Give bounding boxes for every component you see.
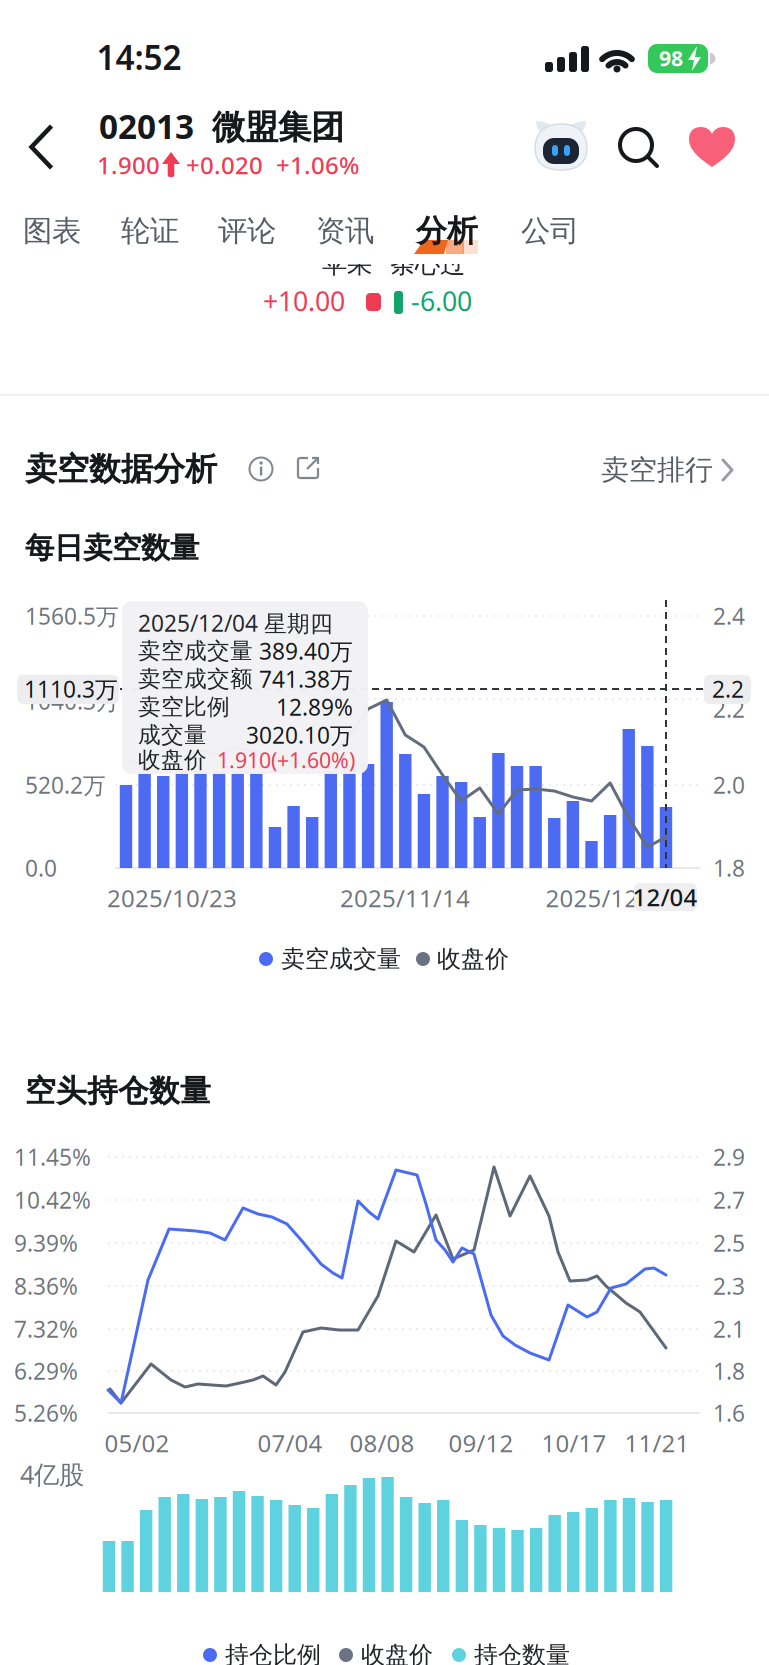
staticText: 2.2 bbox=[712, 674, 744, 704]
staticText: 收盘价 bbox=[138, 746, 207, 774]
staticText: 12/04 bbox=[632, 881, 697, 913]
staticText: 卖空成交量 bbox=[281, 944, 401, 974]
staticText: 收盘价 bbox=[361, 1640, 433, 1665]
button[interactable]: 资讯 bbox=[316, 213, 374, 249]
staticText: 轮证 bbox=[121, 213, 179, 249]
button[interactable]: 公司 bbox=[521, 213, 579, 249]
staticText: 1560.5万 bbox=[25, 601, 119, 631]
staticText: -6.00 bbox=[411, 283, 472, 319]
staticText: 98 bbox=[659, 44, 683, 72]
staticText: 2025/12 bbox=[545, 882, 638, 914]
staticText: 0.0 bbox=[25, 853, 57, 883]
staticText: +1.06% bbox=[276, 149, 359, 181]
staticText: 1.900 bbox=[97, 149, 160, 181]
staticText: 公司 bbox=[521, 213, 579, 249]
staticText: 空头持仓数量 bbox=[25, 1072, 211, 1110]
staticText: 2.9 bbox=[713, 1142, 745, 1172]
staticText: 2.2 bbox=[713, 694, 745, 724]
staticText: 07/04 bbox=[257, 1427, 322, 1459]
staticText: 条心过 bbox=[390, 248, 465, 279]
staticText: 1.8 bbox=[713, 853, 745, 883]
button[interactable]: AI assistant bbox=[534, 120, 588, 172]
staticText: 6.29% bbox=[14, 1356, 78, 1386]
staticText: 2.7 bbox=[713, 1185, 745, 1215]
staticText: 3020.10万 bbox=[246, 720, 353, 750]
staticText: 7.32% bbox=[14, 1314, 78, 1344]
staticText: 4亿股 bbox=[20, 1457, 84, 1491]
staticText: 1.6 bbox=[713, 1398, 745, 1428]
staticText: 卖空成交量 bbox=[138, 637, 253, 665]
staticText: 持仓比例 bbox=[225, 1640, 321, 1665]
staticText: 图表 bbox=[23, 213, 81, 249]
staticText: 05/02 bbox=[104, 1427, 169, 1459]
staticText: 成交量 bbox=[138, 721, 207, 749]
staticText: 2.5 bbox=[713, 1228, 745, 1258]
button[interactable]: Share bbox=[295, 455, 321, 481]
staticText: +0.020 bbox=[186, 149, 263, 181]
staticText: +10.00 bbox=[263, 283, 345, 319]
staticText: 9.39% bbox=[14, 1228, 78, 1258]
staticText: 2.4 bbox=[713, 601, 745, 631]
staticText: 2025/11/14 bbox=[340, 882, 470, 914]
button[interactable]: 轮证 bbox=[121, 213, 179, 249]
staticText: 5.26% bbox=[14, 1398, 78, 1428]
button[interactable]: Info bbox=[248, 456, 274, 482]
staticText: 1110.3万 bbox=[24, 674, 118, 704]
staticText: 资讯 bbox=[316, 213, 374, 249]
staticText: 2.3 bbox=[713, 1271, 745, 1301]
button[interactable]: Search bbox=[616, 125, 662, 171]
staticText: 1.8 bbox=[713, 1356, 745, 1386]
staticText: 卖空比例 bbox=[138, 693, 230, 721]
button[interactable]: 分析 bbox=[416, 212, 478, 250]
staticText: 2.1 bbox=[713, 1314, 745, 1344]
button[interactable]: 评论 bbox=[218, 213, 276, 249]
staticText: 2025/12/04 星期四 bbox=[138, 608, 333, 638]
button[interactable]: 卖空排行 bbox=[601, 453, 733, 487]
staticText: 2025/10/23 bbox=[107, 882, 237, 914]
staticText: 11.45% bbox=[14, 1142, 91, 1172]
staticText: 收盘价 bbox=[437, 944, 509, 974]
staticText: 分析 bbox=[416, 212, 478, 250]
staticText: 08/08 bbox=[349, 1427, 414, 1459]
staticText: 09/12 bbox=[448, 1427, 513, 1459]
staticText: 10/17 bbox=[541, 1427, 606, 1459]
staticText: 卖空数据分析 bbox=[25, 449, 217, 489]
staticText: 389.40万 bbox=[259, 636, 353, 666]
staticText: 10.42% bbox=[14, 1185, 91, 1215]
staticText: 14:52 bbox=[96, 35, 181, 79]
button[interactable]: Back bbox=[29, 124, 54, 170]
staticText: 持仓数量 bbox=[474, 1640, 570, 1665]
staticText: 02013 微盟集团 bbox=[99, 104, 344, 148]
staticText: 1040.3万 bbox=[25, 686, 119, 716]
staticText: 8.36% bbox=[14, 1271, 78, 1301]
staticText: 苹果 bbox=[322, 248, 372, 279]
button[interactable]: 图表 bbox=[23, 213, 81, 249]
staticText: 卖空成交额 bbox=[138, 665, 253, 693]
staticText: 1.910(+1.60%) bbox=[217, 746, 355, 774]
staticText: 评论 bbox=[218, 213, 276, 249]
staticText: 520.2万 bbox=[25, 770, 106, 800]
staticText: 卖空排行 bbox=[601, 453, 713, 487]
button[interactable]: Favorite bbox=[689, 125, 735, 169]
staticText: 11/21 bbox=[624, 1427, 689, 1459]
staticText: 12.89% bbox=[276, 692, 353, 722]
staticText: 741.38万 bbox=[259, 664, 353, 694]
staticText: 2.0 bbox=[713, 770, 745, 800]
staticText: 每日卖空数量 bbox=[25, 530, 199, 566]
